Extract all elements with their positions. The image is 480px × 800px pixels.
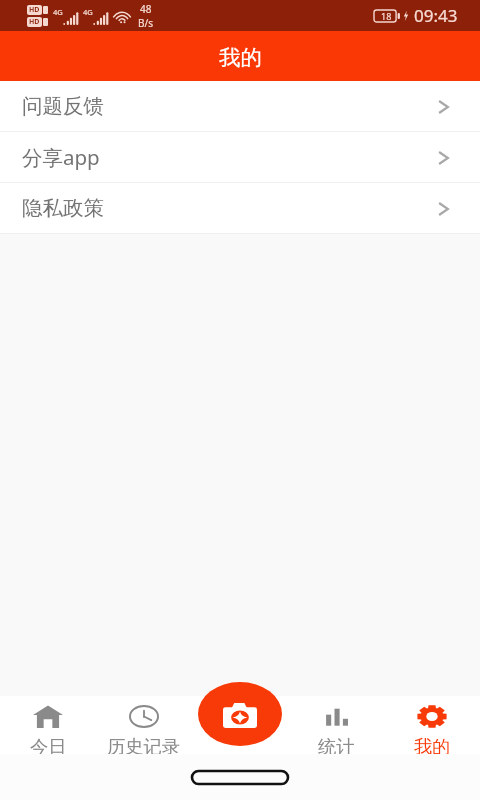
staticText: 4G — [83, 7, 93, 17]
staticText: 48 — [140, 2, 152, 16]
button[interactable]: 隐私政策 — [0, 183, 480, 233]
staticText: 我的 — [219, 44, 262, 71]
button[interactable]: 我的 — [384, 705, 480, 754]
staticText: B/s — [138, 16, 154, 30]
staticText: 分享app — [22, 143, 100, 171]
staticText: 问题反馈 — [22, 93, 104, 119]
staticText: 隐私政策 — [22, 195, 104, 221]
staticText: 历史记录 — [107, 735, 181, 754]
staticText: 今日 — [30, 735, 67, 754]
button[interactable]: 今日 — [0, 705, 96, 754]
staticText: 09:43 — [414, 4, 458, 27]
button[interactable]: Take photo — [198, 682, 282, 746]
staticText: 统计 — [318, 735, 355, 754]
staticText: 4G — [53, 7, 63, 17]
staticText: HD — [29, 5, 40, 15]
button[interactable]: 分享app — [0, 132, 480, 182]
staticText: 18 — [381, 10, 392, 22]
button[interactable]: 统计 — [288, 705, 384, 754]
button[interactable]: 历史记录 — [96, 705, 192, 754]
staticText: HD — [29, 17, 40, 27]
staticText: 我的 — [414, 735, 451, 754]
button[interactable]: 问题反馈 — [0, 81, 480, 131]
